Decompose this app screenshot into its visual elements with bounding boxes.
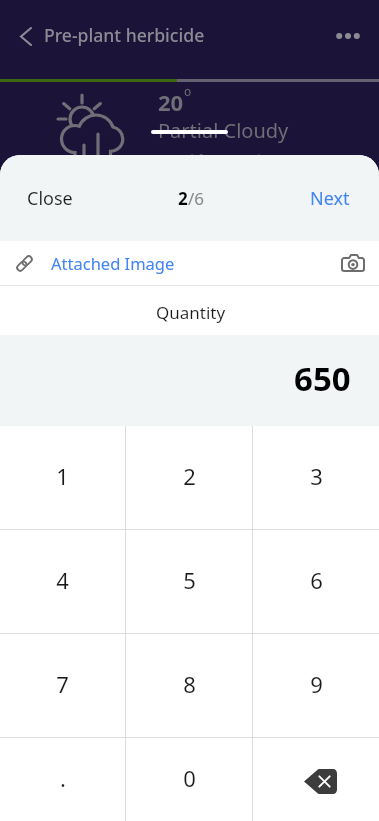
button[interactable]: 4 (0, 530, 125, 633)
staticText: 2 (183, 461, 196, 491)
staticText: 2 (178, 187, 188, 210)
staticText: Pre-plant herbicide (44, 23, 205, 47)
staticText: 7 (56, 669, 69, 699)
staticText: o (184, 83, 192, 99)
staticText: 8 (183, 669, 196, 699)
button[interactable]: Next (298, 178, 362, 219)
staticText: Quantity (156, 301, 226, 324)
button[interactable]: More options (335, 10, 379, 62)
button[interactable]: 9 (253, 634, 379, 737)
button[interactable]: Take photo (327, 241, 379, 285)
button[interactable]: 8 (126, 634, 252, 737)
staticText: 9 (310, 669, 323, 699)
button[interactable]: Backspace (253, 738, 379, 821)
button[interactable]: 0 (126, 738, 252, 821)
button[interactable]: 5 (126, 530, 252, 633)
button[interactable]: 3 (253, 426, 379, 529)
staticText: Close (27, 186, 73, 211)
staticText: Good for Spraying (158, 150, 278, 169)
staticText: . (60, 763, 66, 793)
button[interactable]: 2 (126, 426, 252, 529)
staticText: 6 (310, 565, 323, 595)
button[interactable]: Attached Image (0, 241, 379, 285)
button[interactable]: 1 (0, 426, 125, 529)
button[interactable]: Close (15, 178, 85, 219)
staticText: 0 (183, 763, 196, 793)
button[interactable]: 6 (253, 530, 379, 633)
button[interactable]: . (0, 738, 125, 821)
staticText: 4 (56, 565, 69, 595)
staticText: /6 (188, 187, 205, 210)
staticText: Partial Cloudy (158, 117, 289, 144)
button[interactable]: Back (0, 10, 44, 62)
staticText: 1 (56, 461, 69, 491)
staticText: 3 (310, 461, 323, 491)
button[interactable]: 7 (0, 634, 125, 737)
staticText: 20 (158, 87, 184, 117)
staticText: Next (310, 186, 350, 211)
staticText: Attached Image (51, 252, 175, 274)
staticText: 5 (183, 565, 196, 595)
staticText: 650 (294, 356, 351, 401)
